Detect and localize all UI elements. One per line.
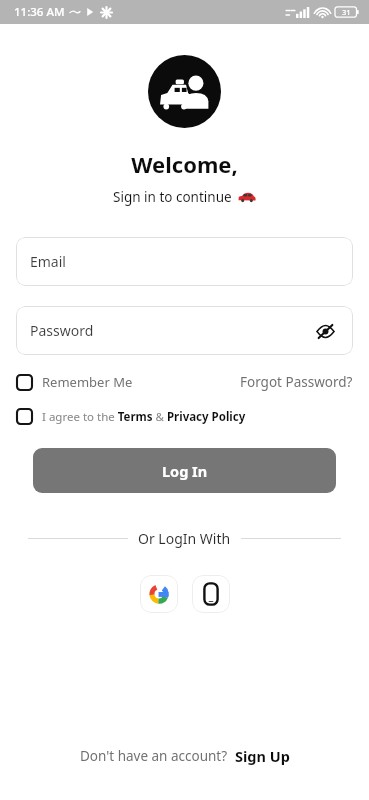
button[interactable]: Email (16, 237, 353, 286)
staticText: Welcome, (0, 149, 369, 179)
staticText: 31 (342, 7, 351, 17)
button[interactable]: Log In (33, 448, 336, 493)
button[interactable]: Sign Up (235, 746, 290, 766)
staticText: Log In (162, 461, 208, 481)
staticText: Forgot Password? (240, 373, 353, 391)
staticText: Sign Up (235, 746, 290, 766)
other: App logo (148, 55, 221, 128)
staticText: 11:36 AM (14, 4, 65, 20)
staticText: Sign in to continue (113, 188, 232, 206)
button[interactable]: Remember Me (16, 369, 133, 395)
button[interactable]: Sign in with phone (192, 575, 230, 613)
button[interactable]: I agree to the Terms & Privacy Policy (16, 405, 246, 428)
staticText: I agree to the Terms & Privacy Policy (42, 409, 246, 425)
staticText: Don't have an account? (80, 747, 228, 765)
staticText: Remember Me (42, 373, 133, 391)
staticText: Or LogIn With (138, 529, 231, 548)
button[interactable]: Password (16, 306, 353, 355)
staticText: Password (30, 321, 94, 340)
button[interactable]: Forgot Password? (240, 369, 353, 395)
staticText: Email (30, 252, 66, 271)
button[interactable]: Sign in with Google (140, 575, 178, 613)
button[interactable]: Show password (311, 317, 339, 345)
